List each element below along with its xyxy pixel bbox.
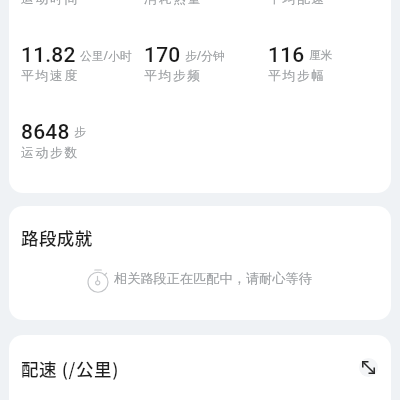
staticText: 170 <box>144 43 181 68</box>
staticText: 消耗热量 <box>144 0 202 7</box>
staticText: 平均配速 <box>268 0 326 7</box>
staticText: 厘米 <box>309 48 333 63</box>
staticText: 公里/小时 <box>80 47 132 63</box>
staticText: 相关路段正在匹配中，请耐心等待 <box>114 270 312 287</box>
staticText: 路段成就 <box>21 225 93 250</box>
staticText: 步/分钟 <box>185 47 225 63</box>
staticText: 运动时间 <box>21 0 79 7</box>
staticText: 8648 <box>21 120 70 145</box>
staticText: 平均速度 <box>21 68 79 84</box>
staticText: 平均步幅 <box>268 68 326 84</box>
staticText: 运动步数 <box>21 145 79 161</box>
staticText: 步 <box>74 125 86 140</box>
staticText: 平均步频 <box>144 68 202 84</box>
staticText: 11.82 <box>21 43 76 68</box>
staticText: 116 <box>268 43 305 68</box>
staticText: 配速 (/公里) <box>21 356 120 381</box>
button[interactable]: Expand chart <box>359 358 378 377</box>
